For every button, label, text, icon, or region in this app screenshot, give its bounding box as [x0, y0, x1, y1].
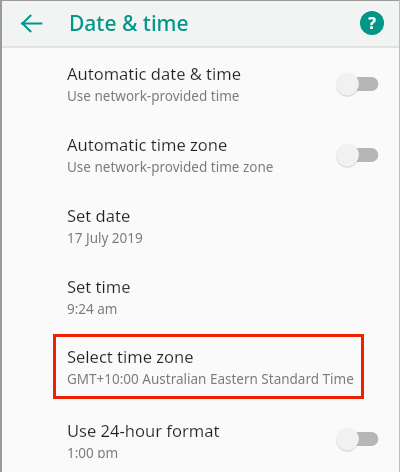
button[interactable]: Select time zone: [53, 334, 364, 399]
staticText: GMT+10:00 Australian Eastern Standard Ti…: [67, 370, 354, 388]
staticText: Date & time: [69, 9, 189, 38]
button[interactable]: Set time: [0, 261, 400, 334]
staticText: 9:24 am: [67, 300, 118, 318]
staticText: Automatic time zone: [67, 133, 228, 155]
staticText: Use network-provided time: [67, 87, 240, 105]
staticText: Set time: [67, 275, 131, 297]
staticText: ?: [368, 12, 376, 34]
button[interactable]: Toggle, off: [336, 426, 382, 452]
button[interactable]: Use 24-hour format: [0, 399, 400, 472]
button[interactable]: Set date: [0, 190, 400, 261]
button[interactable]: Automatic date & time: [0, 48, 400, 119]
staticText: Use network-provided time zone: [67, 158, 274, 176]
button[interactable]: Automatic time zone: [0, 119, 400, 190]
button[interactable]: Navigate up: [13, 5, 49, 41]
staticText: Select time zone: [67, 345, 194, 367]
staticText: 17 July 2019: [67, 229, 143, 247]
staticText: Automatic date & time: [67, 62, 242, 84]
button[interactable]: Toggle, off: [336, 71, 382, 97]
staticText: Use 24-hour format: [67, 419, 220, 441]
button[interactable]: Help: [354, 5, 390, 41]
staticText: 1:00 pm: [67, 444, 119, 458]
button[interactable]: Toggle, off: [336, 142, 382, 168]
staticText: Set date: [67, 204, 131, 226]
